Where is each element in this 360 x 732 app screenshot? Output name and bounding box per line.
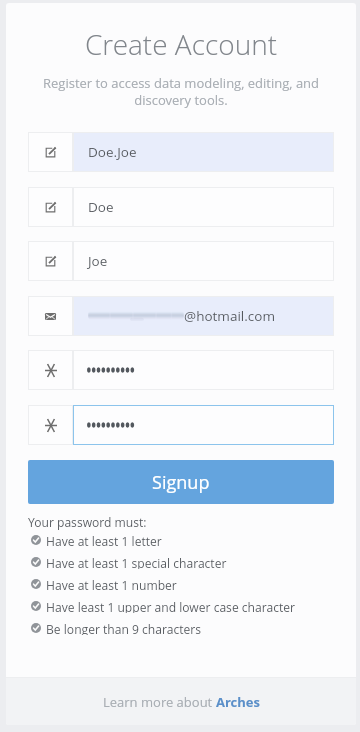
staticText: Doe.Joe: [88, 143, 137, 161]
button[interactable]: Doe.Joe: [28, 132, 334, 172]
staticText: Create Account: [6, 25, 356, 63]
staticText: Doe: [88, 198, 114, 216]
button[interactable]: @hotmail.com: [28, 296, 334, 336]
staticText: Learn more about: [103, 693, 216, 711]
staticText: Have at least 1 letter: [46, 533, 162, 547]
staticText: Be longer than 9 characters: [46, 621, 201, 635]
staticText: Have at least 1 special character: [46, 555, 227, 569]
staticText: Have least 1 upper and lower case charac…: [46, 599, 295, 613]
staticText: Register to access data modeling, editin…: [40, 74, 322, 109]
button[interactable]: Doe: [28, 187, 334, 227]
button[interactable]: [28, 350, 334, 390]
staticText: @hotmail.com: [184, 307, 275, 325]
button[interactable]: Arches: [216, 693, 260, 711]
staticText: Joe: [88, 252, 108, 270]
staticText: Signup: [152, 470, 210, 495]
staticText: Have at least 1 number: [46, 577, 177, 591]
button[interactable]: [28, 405, 334, 445]
button[interactable]: Joe: [28, 241, 334, 281]
staticText: Your password must:: [28, 514, 147, 530]
button[interactable]: Signup: [28, 460, 334, 504]
